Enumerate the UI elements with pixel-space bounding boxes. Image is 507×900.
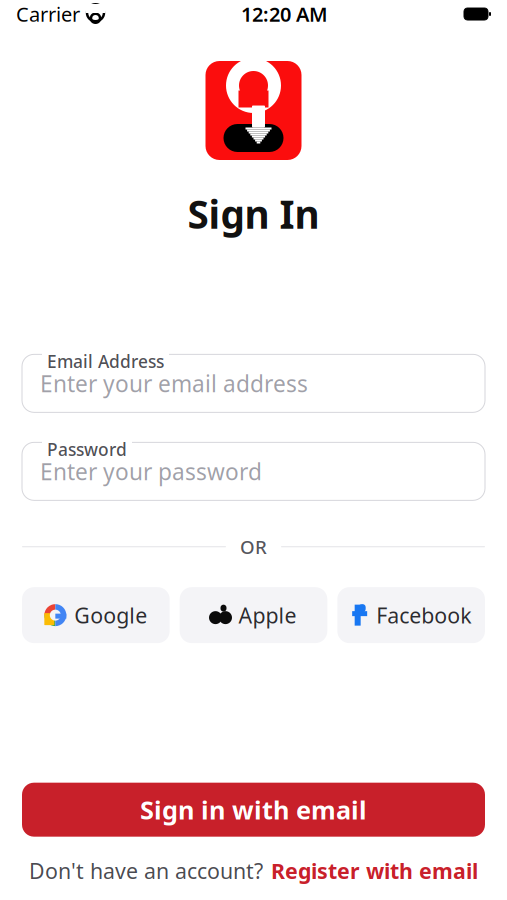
staticText: Sign in with email: [140, 793, 367, 826]
staticText: Register with email: [271, 857, 478, 885]
staticText: Facebook: [376, 601, 471, 629]
staticText: 12:20 AM: [241, 1, 328, 27]
staticText: Password: [47, 438, 127, 461]
button[interactable]: Register with email: [271, 857, 478, 885]
staticText: Apple: [238, 601, 296, 629]
button[interactable]: Google: [22, 587, 170, 643]
button[interactable]: Apple: [180, 587, 327, 643]
staticText: Enter your email address: [40, 368, 308, 398]
staticText: Enter your password: [40, 456, 262, 486]
staticText: Sign In: [187, 188, 319, 239]
staticText: OR: [240, 534, 267, 559]
staticText: Email Address: [47, 350, 164, 373]
button[interactable]: Facebook: [337, 587, 485, 643]
staticText: Google: [74, 601, 147, 629]
button[interactable]: Sign in with email: [22, 783, 485, 837]
staticText: Don't have an account?: [29, 857, 263, 885]
staticText: Carrier: [16, 1, 80, 27]
